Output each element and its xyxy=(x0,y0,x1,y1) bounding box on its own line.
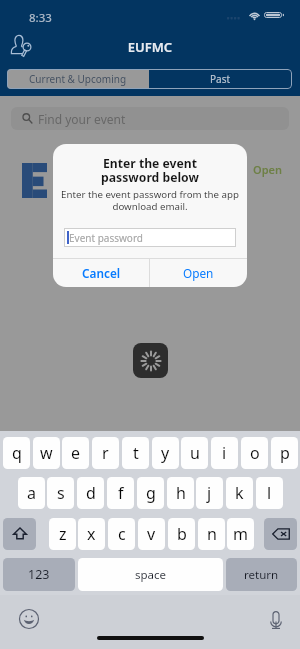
staticText: f xyxy=(118,482,124,504)
staticText: Open xyxy=(253,162,282,177)
button[interactable]: Dictation xyxy=(266,610,286,630)
staticText: u xyxy=(190,442,200,464)
staticText: y xyxy=(161,442,170,464)
staticText: Find your event xyxy=(38,111,126,127)
button[interactable]: i xyxy=(211,437,238,469)
button[interactable]: v xyxy=(138,518,165,550)
button[interactable]: b xyxy=(168,518,195,550)
button[interactable]: g xyxy=(137,477,164,509)
staticText: s xyxy=(57,482,65,504)
staticText: n xyxy=(207,523,217,545)
staticText: Past xyxy=(210,72,231,86)
button[interactable]: Cancel xyxy=(53,259,149,287)
button[interactable]: o xyxy=(241,437,268,469)
button[interactable]: Find your event xyxy=(11,107,289,130)
button[interactable]: d xyxy=(77,477,104,509)
button[interactable]: Shift xyxy=(3,518,36,550)
staticText: Event password xyxy=(69,231,143,245)
staticText: e xyxy=(71,442,81,464)
staticText: b xyxy=(177,523,187,545)
staticText: z xyxy=(59,523,67,545)
staticText: o xyxy=(250,442,260,464)
button[interactable]: y xyxy=(152,437,179,469)
staticText: a xyxy=(27,482,36,504)
button[interactable]: w xyxy=(33,437,60,469)
button[interactable]: Emoji keyboard xyxy=(19,609,39,629)
button[interactable]: s xyxy=(47,477,74,509)
staticText: k xyxy=(235,482,244,504)
button[interactable]: r xyxy=(92,437,119,469)
button[interactable]: k xyxy=(226,477,253,509)
staticText: c xyxy=(118,523,126,545)
staticText: j xyxy=(207,482,212,504)
staticText: r xyxy=(102,442,109,464)
button[interactable]: u xyxy=(181,437,208,469)
staticText: g xyxy=(146,482,156,504)
button[interactable]: m xyxy=(227,518,254,550)
staticText: space xyxy=(135,567,167,583)
button[interactable]: l xyxy=(256,477,283,509)
staticText: v xyxy=(147,523,156,545)
button[interactable]: p xyxy=(271,437,298,469)
staticText: h xyxy=(176,482,186,504)
staticText: Current & Upcoming xyxy=(29,72,127,86)
button[interactable]: z xyxy=(49,518,76,550)
staticText: d xyxy=(86,482,96,504)
staticText: EUFMC xyxy=(0,38,300,56)
button[interactable]: q xyxy=(3,437,30,469)
staticText: Cancel xyxy=(82,265,121,281)
button[interactable]: Event password xyxy=(64,228,236,247)
staticText: i xyxy=(222,442,227,464)
button[interactable]: n xyxy=(198,518,225,550)
staticText: q xyxy=(12,442,22,464)
staticText: t xyxy=(133,442,139,464)
staticText: Open xyxy=(183,265,214,281)
button[interactable]: Delete xyxy=(264,518,297,550)
button[interactable]: a xyxy=(18,477,45,509)
staticText: w xyxy=(40,442,53,464)
staticText: x xyxy=(87,523,96,545)
staticText: Enter the event password from the app do… xyxy=(57,188,243,213)
staticText: return xyxy=(244,567,279,583)
staticText: m xyxy=(233,523,248,545)
staticText: 123 xyxy=(28,566,50,583)
button[interactable]: 123 xyxy=(3,558,75,591)
button[interactable]: e xyxy=(62,437,89,469)
button[interactable]: j xyxy=(196,477,223,509)
button[interactable]: space xyxy=(78,558,223,591)
button[interactable]: f xyxy=(107,477,134,509)
button[interactable]: h xyxy=(167,477,194,509)
button[interactable]: Open xyxy=(150,259,247,287)
staticText: l xyxy=(267,482,272,504)
button[interactable]: x xyxy=(78,518,105,550)
button[interactable]: Current & Upcoming xyxy=(7,69,149,89)
button[interactable]: Account login xyxy=(8,33,34,59)
staticText: Enter the event password below xyxy=(63,155,237,186)
staticText: 8:33 xyxy=(29,10,52,26)
button[interactable]: c xyxy=(108,518,135,550)
button[interactable]: t xyxy=(122,437,149,469)
staticText: p xyxy=(280,442,290,464)
button[interactable]: Past xyxy=(149,69,292,89)
button[interactable]: return xyxy=(226,558,297,591)
